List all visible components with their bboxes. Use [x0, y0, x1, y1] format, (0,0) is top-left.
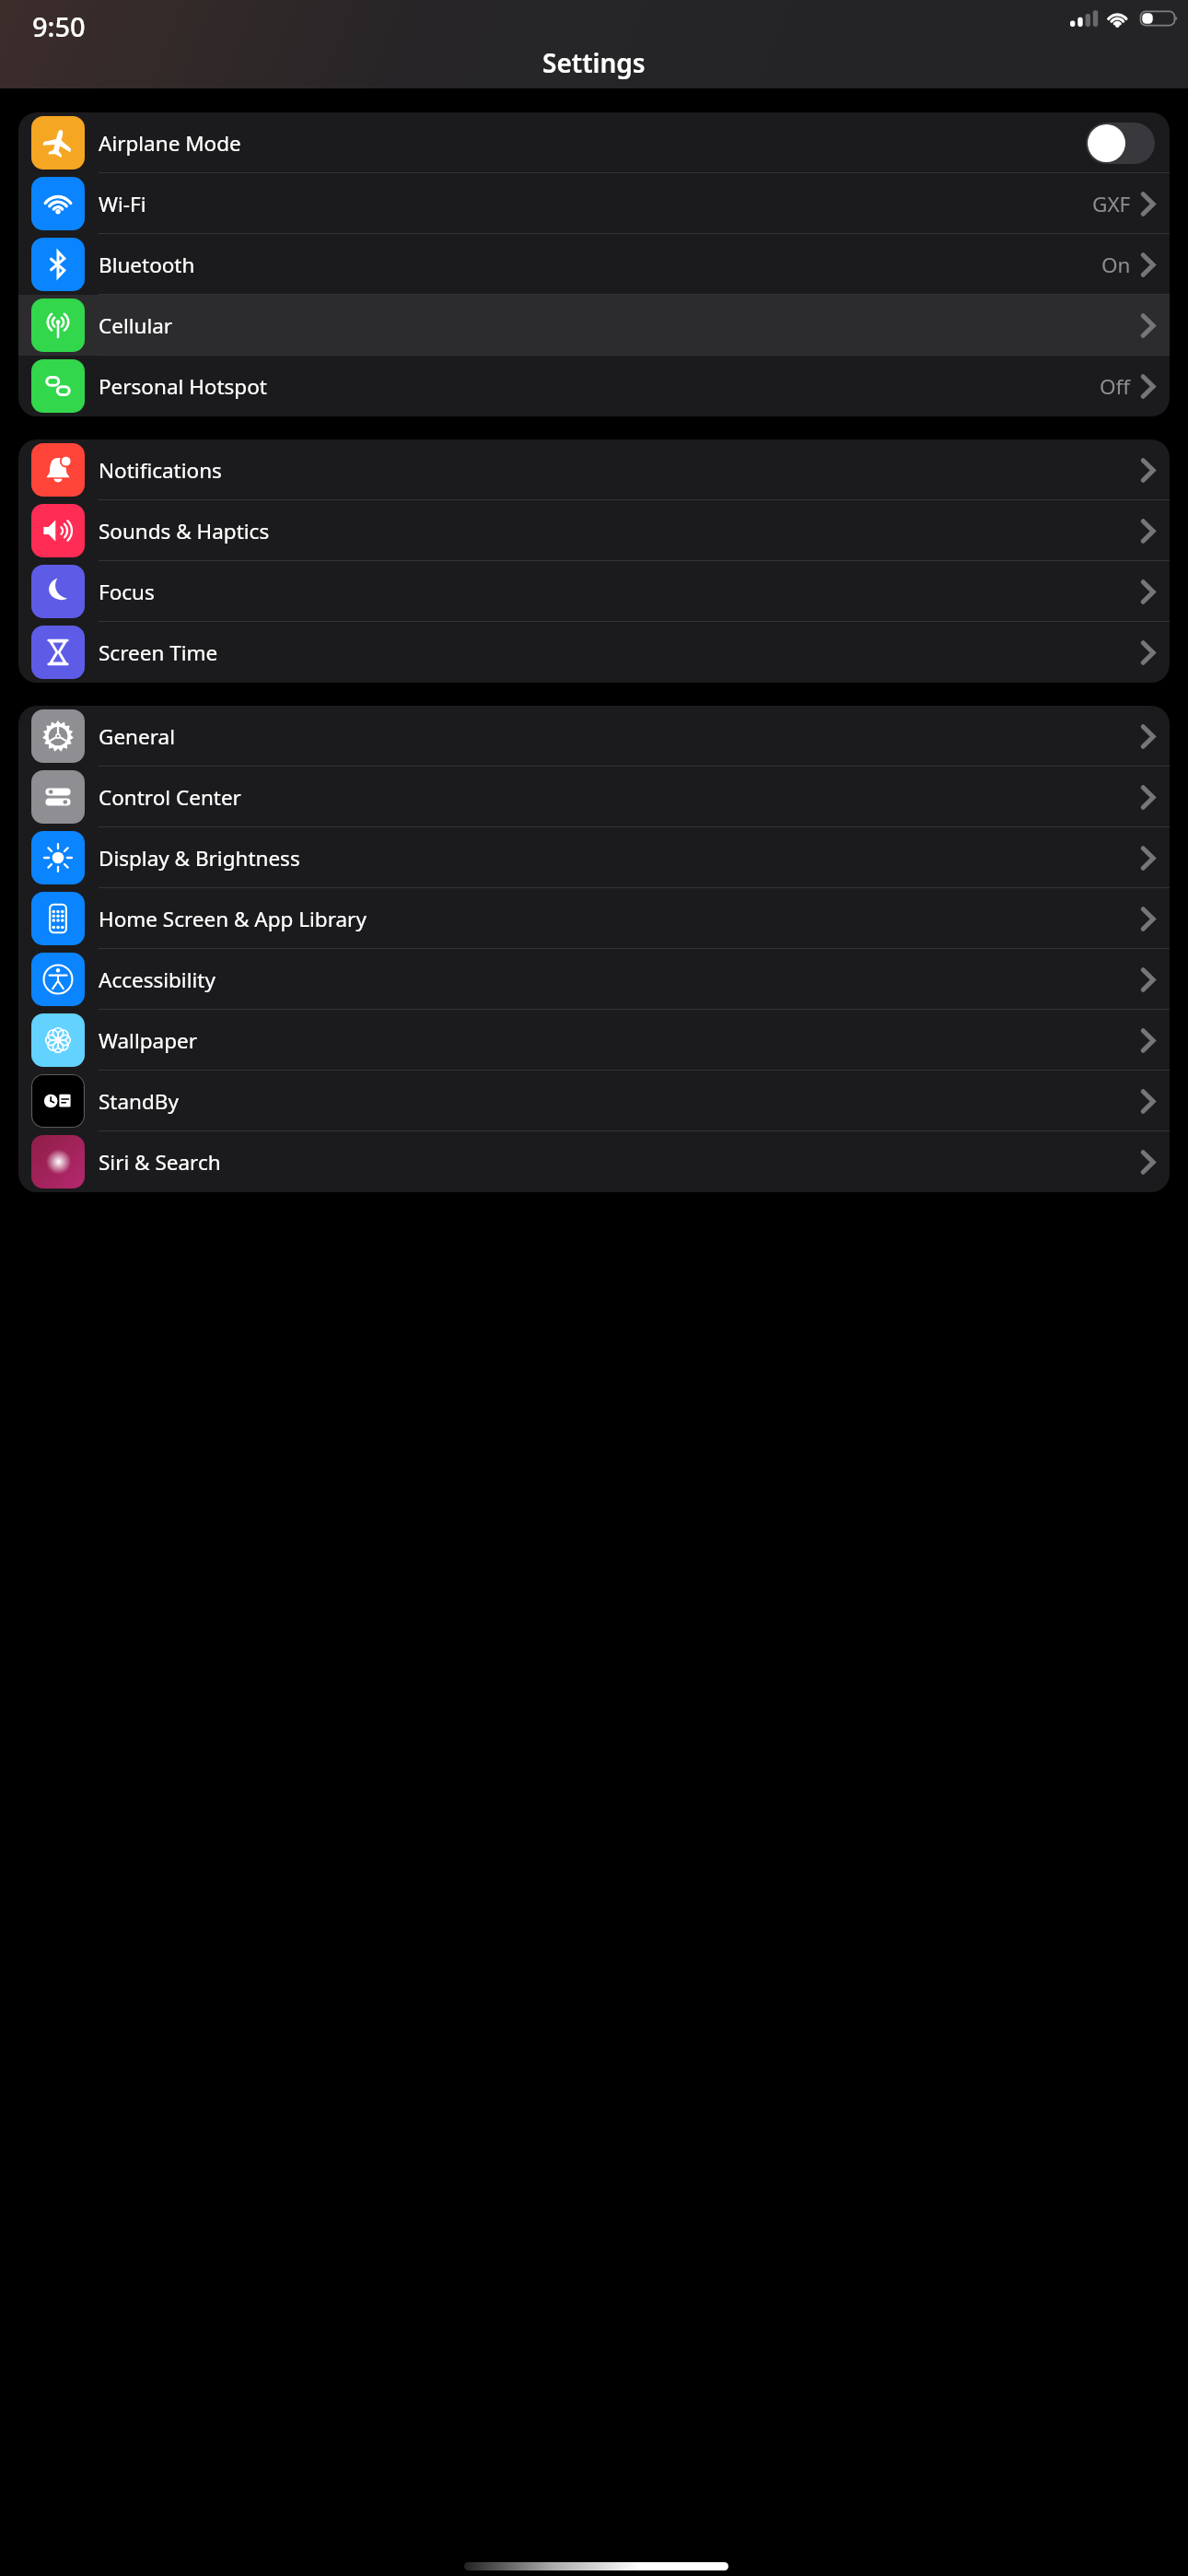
- button[interactable]: Focus: [18, 561, 1170, 622]
- staticText: Off: [1100, 372, 1131, 401]
- staticText: Notifications: [99, 456, 1141, 485]
- staticText: Bluetooth: [99, 251, 1101, 279]
- button[interactable]: Wi-Fi: [18, 173, 1170, 234]
- staticText: Wallpaper: [99, 1026, 1141, 1055]
- button[interactable]: Wallpaper: [18, 1010, 1170, 1071]
- staticText: Airplane Mode: [99, 129, 1086, 158]
- staticText: Home Screen & App Library: [99, 905, 1141, 933]
- button[interactable]: Bluetooth: [18, 234, 1170, 295]
- staticText: Control Center: [99, 783, 1141, 812]
- staticText: Cellular: [99, 311, 1141, 340]
- staticText: Siri & Search: [99, 1148, 1141, 1177]
- staticText: Personal Hotspot: [99, 372, 1100, 401]
- staticText: StandBy: [99, 1087, 1141, 1116]
- staticText: On: [1101, 251, 1131, 279]
- staticText: GXF: [1092, 190, 1131, 218]
- button[interactable]: Display & Brightness: [18, 827, 1170, 888]
- staticText: Settings: [542, 45, 646, 80]
- button[interactable]: Siri & Search: [18, 1131, 1170, 1192]
- button[interactable]: Airplane Mode: [18, 112, 1170, 173]
- button[interactable]: Notifications: [18, 439, 1170, 500]
- button[interactable]: Screen Time: [18, 622, 1170, 683]
- button[interactable]: Sounds & Haptics: [18, 500, 1170, 561]
- staticText: Wi-Fi: [99, 190, 1092, 218]
- button[interactable]: Airplane Mode toggle: [1086, 123, 1155, 164]
- button[interactable]: Cellular: [18, 295, 1170, 356]
- staticText: Accessibility: [99, 966, 1141, 994]
- staticText: Focus: [99, 578, 1141, 606]
- button[interactable]: General: [18, 706, 1170, 767]
- button[interactable]: StandBy: [18, 1071, 1170, 1131]
- staticText: General: [99, 722, 1141, 751]
- staticText: Display & Brightness: [99, 844, 1141, 872]
- staticText: Sounds & Haptics: [99, 517, 1141, 545]
- staticText: Screen Time: [99, 638, 1141, 667]
- button[interactable]: Control Center: [18, 767, 1170, 827]
- button[interactable]: Home Screen & App Library: [18, 888, 1170, 949]
- staticText: 9:50: [32, 8, 86, 44]
- button[interactable]: Personal Hotspot: [18, 356, 1170, 416]
- button[interactable]: Accessibility: [18, 949, 1170, 1010]
